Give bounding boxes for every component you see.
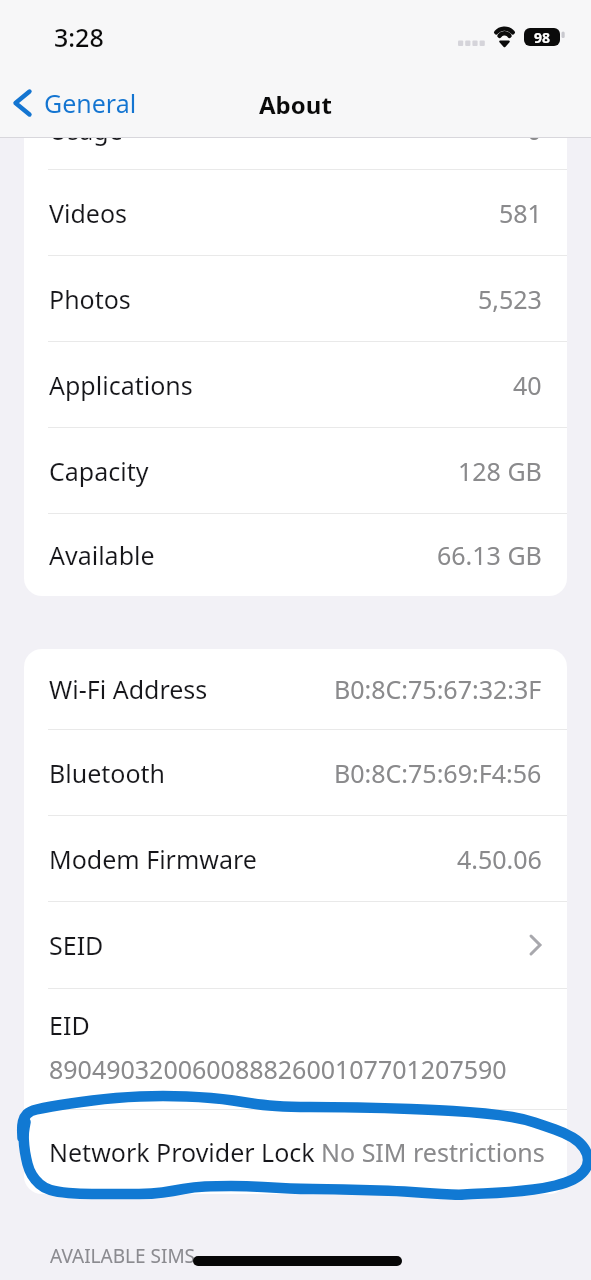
button[interactable]: Photos	[24, 256, 567, 341]
staticText: 3:28	[54, 20, 104, 54]
staticText: Applications	[49, 368, 193, 402]
button[interactable]: Applications	[24, 342, 567, 427]
staticText: 40	[513, 368, 542, 402]
staticText: 5,523	[478, 282, 542, 316]
staticText: About	[259, 88, 332, 121]
other: Annotation highlight	[0, 0, 591, 1280]
button[interactable]: EID	[24, 989, 567, 1109]
staticText: AVAILABLE SIMS	[50, 1243, 196, 1269]
button[interactable]: Modem Firmware	[24, 816, 567, 901]
staticText: B0:8C:75:69:F4:56	[334, 756, 542, 790]
staticText: Available	[49, 538, 155, 572]
button[interactable]: Wi-Fi Address	[24, 649, 567, 729]
staticText: 4.50.06	[457, 842, 542, 876]
button[interactable]: General	[13, 86, 137, 120]
staticText: Modem Firmware	[49, 842, 257, 876]
staticText: 66.13 GB	[437, 538, 542, 572]
button[interactable]: SEID	[24, 902, 567, 988]
button[interactable]: Videos	[24, 170, 567, 255]
button[interactable]: Available	[24, 514, 567, 596]
staticText: 98	[534, 28, 551, 46]
staticText: Network Provider Lock	[49, 1135, 315, 1169]
staticText: B0:8C:75:67:32:3F	[334, 672, 542, 706]
staticText: 89049032006008882600107701207590	[49, 1052, 507, 1086]
staticText: No SIM restrictions	[321, 1135, 545, 1169]
staticText: Capacity	[49, 454, 149, 488]
staticText: Wi-Fi Address	[49, 672, 208, 706]
staticText: 0	[527, 113, 542, 147]
button[interactable]: Network Provider Lock	[24, 1110, 567, 1194]
staticText: SEID	[49, 928, 104, 962]
button[interactable]: Bluetooth	[24, 730, 567, 815]
staticText: Photos	[49, 282, 131, 316]
staticText: Videos	[49, 196, 128, 230]
staticText: Bluetooth	[49, 756, 166, 790]
staticText: Usage	[49, 113, 123, 147]
staticText: 581	[499, 196, 542, 230]
staticText: EID	[49, 1008, 90, 1042]
staticText: 128 GB	[458, 454, 542, 488]
button[interactable]: Capacity	[24, 428, 567, 513]
staticText: General	[44, 86, 137, 120]
button[interactable]: Usage	[24, 91, 567, 169]
